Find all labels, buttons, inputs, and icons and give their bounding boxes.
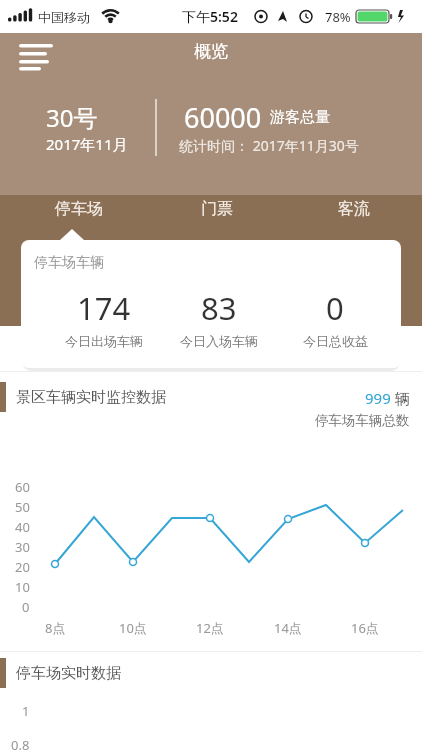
staticText: 客流 <box>338 199 370 219</box>
staticText: 今日总收益 <box>303 333 368 349</box>
staticText: 78% <box>325 8 351 26</box>
staticText: 60000 <box>184 99 262 131</box>
button[interactable] <box>19 43 55 71</box>
staticText: 0 <box>326 287 344 329</box>
staticText: 中国移动 <box>38 9 90 25</box>
staticText: 0.8 <box>11 736 30 750</box>
staticText: 50 <box>15 498 30 516</box>
staticText: 2017年11月 <box>46 134 128 154</box>
staticText: 10 <box>15 578 30 596</box>
staticText: 12点 <box>196 619 224 637</box>
staticText: 174 <box>77 287 131 329</box>
staticText: 停车场车辆总数 <box>315 412 410 429</box>
staticText: 停车场实时数据 <box>16 664 121 683</box>
staticText: 统计时间： 2017年11月30号 <box>179 136 359 155</box>
staticText: 60 <box>15 478 30 496</box>
staticText: 14点 <box>274 619 302 637</box>
staticText: 今日入场车辆 <box>180 333 258 349</box>
staticText: 今日出场车辆 <box>65 333 143 349</box>
staticText: 1 <box>22 702 30 720</box>
staticText: 8点 <box>45 619 66 637</box>
staticText: 20 <box>15 558 30 576</box>
button[interactable]: 客流 <box>285 193 422 224</box>
staticText: 83 <box>201 287 237 329</box>
staticText: 30 <box>15 538 30 556</box>
staticText: 停车场车辆 <box>34 254 104 272</box>
button[interactable]: 门票 <box>148 193 285 224</box>
staticText: 景区车辆实时监控数据 <box>16 388 166 407</box>
staticText: 门票 <box>201 199 233 219</box>
staticText: 0 <box>22 598 30 616</box>
staticText: 999 辆 <box>365 388 410 408</box>
staticText: 40 <box>15 518 30 536</box>
staticText: 30号 <box>46 101 98 134</box>
staticText: 下午5:52 <box>182 7 238 26</box>
staticText: 概览 <box>194 41 228 62</box>
staticText: 10点 <box>119 619 147 637</box>
staticText: 16点 <box>351 619 379 637</box>
button[interactable]: 停车场 <box>10 193 148 224</box>
staticText: 停车场 <box>55 199 103 219</box>
staticText: 游客总量 <box>270 108 330 127</box>
